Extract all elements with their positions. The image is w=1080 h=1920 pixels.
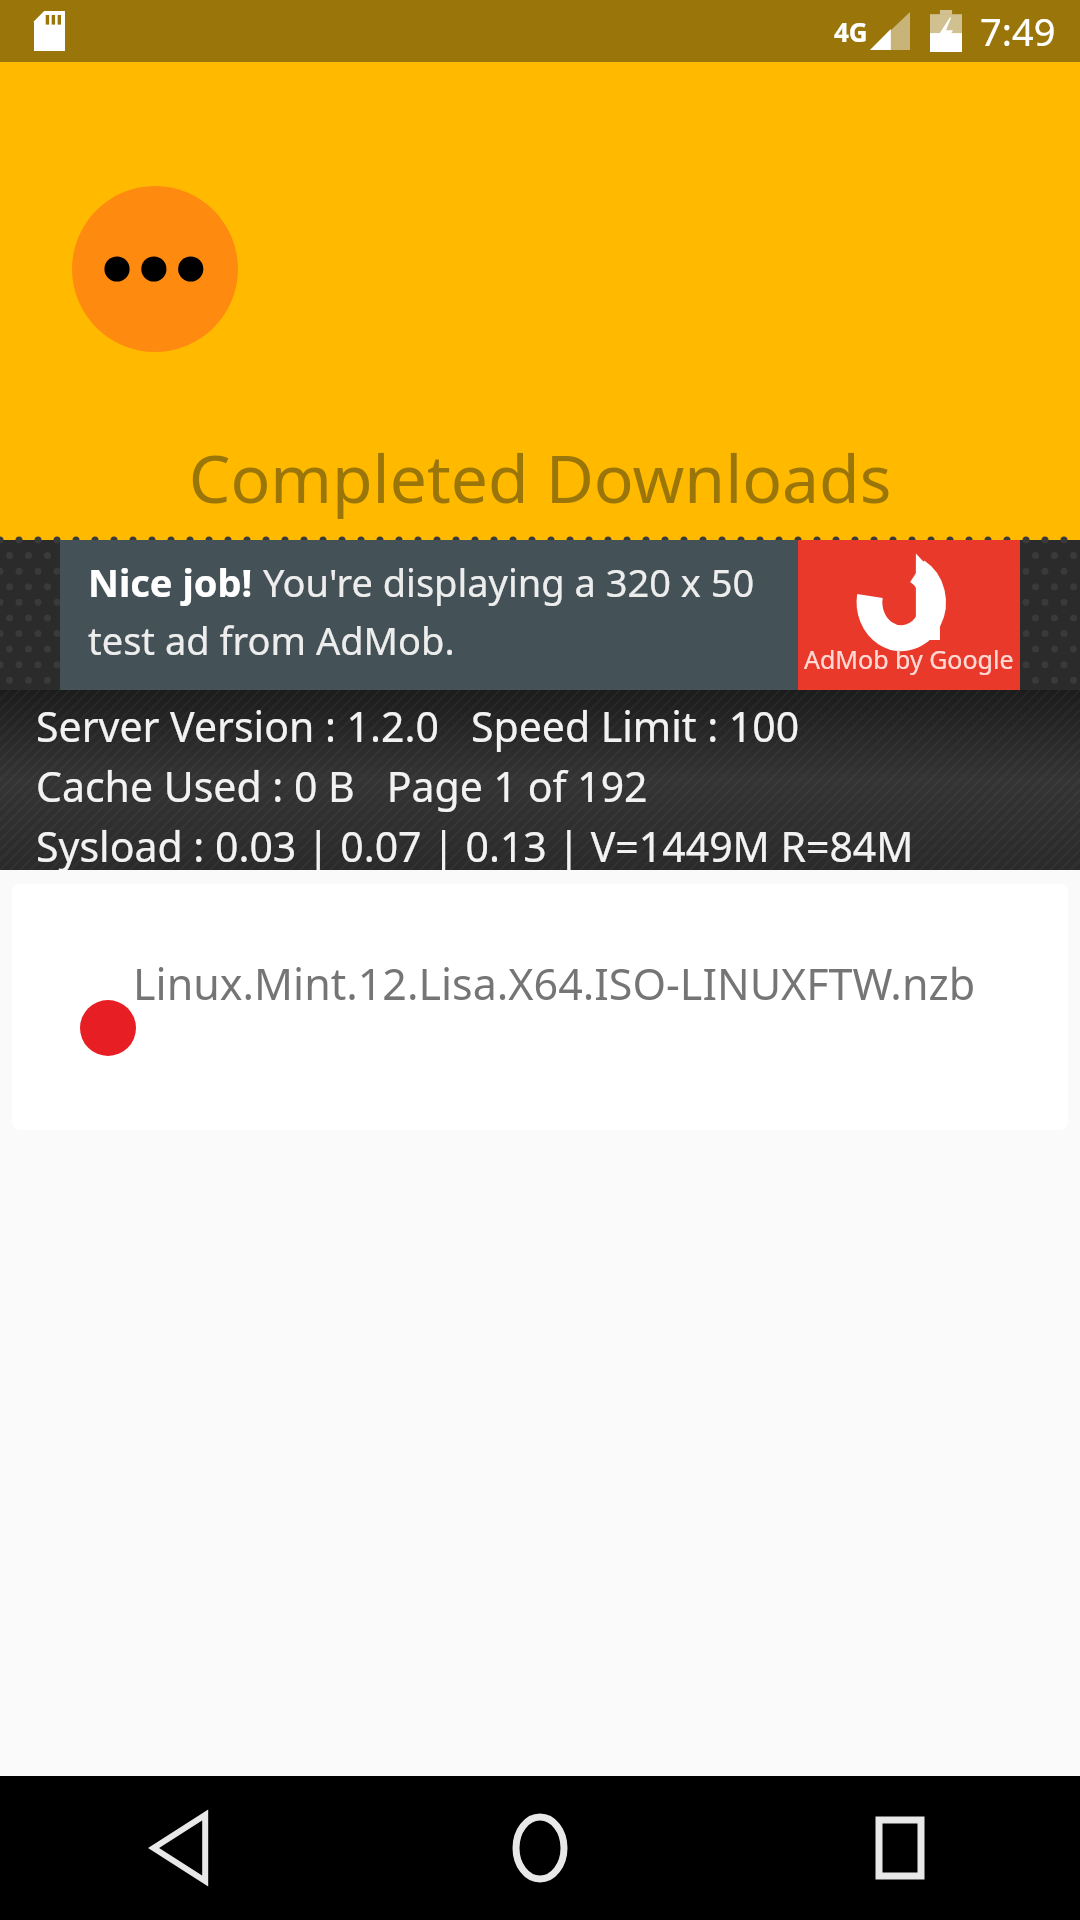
- button[interactable]: More options: [72, 186, 238, 352]
- button[interactable]: Back: [0, 1776, 360, 1920]
- staticText: 7:49: [980, 5, 1056, 57]
- staticText: Nice job!: [88, 556, 263, 608]
- staticText: 4G: [834, 14, 868, 49]
- staticText: Sysload : 0.03 | 0.07 | 0.13 | V=1449M R…: [36, 818, 914, 870]
- button[interactable]: Home: [360, 1776, 720, 1920]
- staticText: Cache Used : 0 B Page 1 of 192: [36, 758, 648, 814]
- staticText: AdMob by Google: [804, 642, 1014, 676]
- staticText: Linux.Mint.12.Lisa.X64.ISO-LINUXFTW.nzb: [133, 954, 976, 1013]
- staticText: Server Version : 1.2.0 Speed Limit : 100: [36, 698, 800, 754]
- button[interactable]: Linux.Mint.12.Lisa.X64.ISO-LINUXFTW.nzb: [12, 884, 1068, 1130]
- button[interactable]: Recents: [720, 1776, 1080, 1920]
- staticText: Completed Downloads: [0, 432, 1080, 522]
- staticText: test ad from AdMob.: [88, 614, 455, 666]
- button[interactable]: Advertisement: [0, 540, 1080, 690]
- staticText: You're displaying a 320 x 50: [263, 556, 755, 608]
